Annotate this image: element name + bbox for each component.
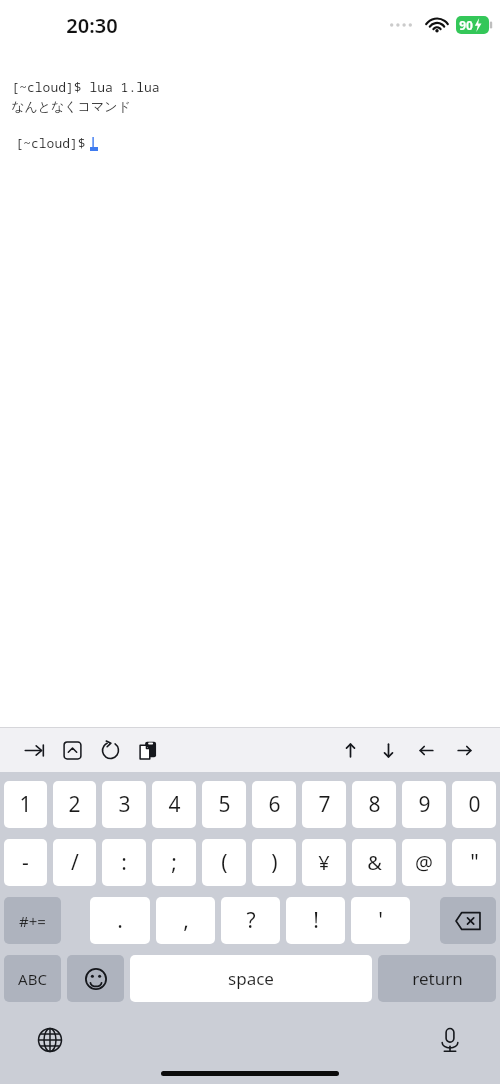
- button[interactable]: #+=: [4, 897, 61, 944]
- button[interactable]: 2: [53, 781, 96, 828]
- button[interactable]: Change keyboard: [34, 1024, 66, 1056]
- button[interactable]: Dictation: [434, 1024, 466, 1056]
- button[interactable]: @: [402, 839, 446, 886]
- button[interactable]: ;: [152, 839, 196, 886]
- staticText: [~cloud]$ lua 1.lua: [11, 78, 160, 96]
- staticText: 5: [218, 790, 231, 819]
- staticText: 6: [268, 790, 281, 819]
- staticText: (: [221, 848, 228, 877]
- staticText: ,: [183, 906, 189, 935]
- button[interactable]: ): [252, 839, 296, 886]
- staticText: @: [415, 849, 433, 876]
- button[interactable]: History: [98, 738, 122, 762]
- button[interactable]: ¥: [302, 839, 346, 886]
- staticText: space: [228, 967, 274, 990]
- button[interactable]: 0: [452, 781, 496, 828]
- staticText: ": [470, 848, 479, 877]
- button[interactable]: ': [351, 897, 410, 944]
- staticText: 1: [19, 790, 32, 819]
- button[interactable]: /: [53, 839, 96, 886]
- staticText: .: [117, 906, 123, 935]
- staticText: return: [412, 967, 463, 990]
- staticText: ?: [246, 906, 256, 935]
- staticText: ': [378, 906, 383, 935]
- button[interactable]: 4: [152, 781, 196, 828]
- button[interactable]: ABC: [4, 955, 61, 1002]
- staticText: !: [313, 906, 319, 935]
- staticText: -: [22, 848, 29, 877]
- staticText: なんとなくコマンド: [11, 98, 131, 114]
- staticText: &: [367, 849, 382, 876]
- button[interactable]: ?: [221, 897, 280, 944]
- button[interactable]: Backspace: [440, 897, 496, 944]
- button[interactable]: return: [378, 955, 496, 1002]
- button[interactable]: 8: [352, 781, 396, 828]
- staticText: :: [121, 848, 127, 877]
- button[interactable]: &: [352, 839, 396, 886]
- button[interactable]: (: [202, 839, 246, 886]
- button[interactable]: !: [286, 897, 345, 944]
- staticText: 9: [418, 790, 431, 819]
- button[interactable]: -: [4, 839, 47, 886]
- staticText: 90: [459, 17, 473, 33]
- button[interactable]: 3: [102, 781, 146, 828]
- button[interactable]: Tab: [22, 738, 46, 762]
- staticText: 0: [468, 790, 481, 819]
- button[interactable]: 9: [402, 781, 446, 828]
- staticText: 3: [118, 790, 131, 819]
- button[interactable]: Arrow left: [414, 738, 438, 762]
- staticText: [~cloud]$: [11, 134, 90, 152]
- button[interactable]: space: [130, 955, 372, 1002]
- button[interactable]: 7: [302, 781, 346, 828]
- button[interactable]: 5: [202, 781, 246, 828]
- staticText: 20:30: [66, 12, 118, 39]
- button[interactable]: Control: [60, 738, 84, 762]
- staticText: ¥: [318, 849, 330, 876]
- button[interactable]: ": [452, 839, 496, 886]
- button[interactable]: ,: [156, 897, 215, 944]
- button[interactable]: Arrow right: [452, 738, 476, 762]
- button[interactable]: Emoji: [67, 955, 124, 1002]
- staticText: ;: [171, 848, 177, 877]
- staticText: /: [71, 848, 79, 877]
- staticText: ): [271, 848, 278, 877]
- button[interactable]: Arrow up: [338, 738, 362, 762]
- staticText: 8: [368, 790, 381, 819]
- staticText: 4: [168, 790, 181, 819]
- button[interactable]: 6: [252, 781, 296, 828]
- button[interactable]: .: [90, 897, 150, 944]
- staticText: ABC: [18, 969, 47, 989]
- staticText: 2: [68, 790, 81, 819]
- button[interactable]: Paste: [136, 738, 160, 762]
- button[interactable]: Arrow down: [376, 738, 400, 762]
- staticText: #+=: [19, 911, 46, 931]
- button[interactable]: :: [102, 839, 146, 886]
- button[interactable]: 1: [4, 781, 47, 828]
- staticText: 7: [318, 790, 331, 819]
